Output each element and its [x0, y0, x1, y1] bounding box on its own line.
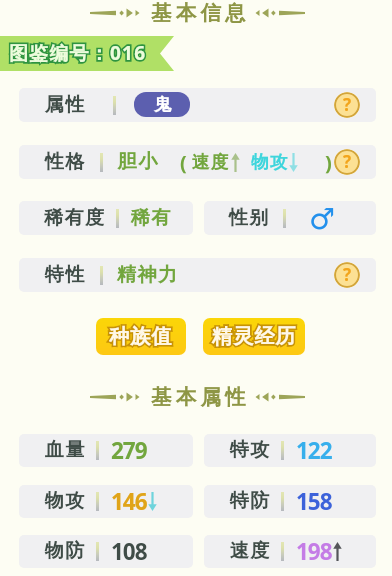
staticText: 精灵经历 [212, 324, 297, 349]
staticText: 稀有度 [44, 206, 106, 230]
staticText: 性格 [44, 150, 85, 174]
staticText: ? [343, 263, 352, 286]
button[interactable] [204, 535, 376, 568]
staticText: 物攻 [44, 489, 85, 513]
staticText: 122 [296, 435, 332, 466]
staticText: 图鉴编号：016 [9, 40, 147, 66]
button[interactable]: Help [334, 149, 360, 175]
staticText: 158 [296, 486, 332, 517]
staticText: 特攻 [229, 438, 270, 462]
staticText: 血量 [44, 438, 85, 462]
staticText: ( [180, 149, 187, 176]
button[interactable] [19, 201, 193, 235]
staticText: 特防 [229, 489, 270, 513]
staticText: ♂ [309, 202, 335, 234]
staticText: 精神力 [117, 263, 179, 287]
button[interactable] [204, 434, 376, 467]
staticText: 速度 [229, 539, 270, 563]
button[interactable]: Help [334, 92, 360, 118]
staticText: 基本属性 [151, 384, 250, 410]
button[interactable] [19, 485, 193, 518]
staticText: 精灵经历 [212, 324, 297, 349]
staticText: ? [343, 93, 352, 116]
staticText: 胆小 [117, 150, 158, 174]
staticText: 146 [111, 486, 147, 517]
staticText: 种族值 [109, 324, 173, 349]
staticText: 279 [111, 435, 147, 466]
button[interactable] [19, 88, 376, 122]
button[interactable]: 鬼 [134, 92, 190, 117]
button[interactable] [19, 434, 193, 467]
button[interactable]: Help [334, 262, 360, 288]
button[interactable] [204, 201, 376, 235]
staticText: 108 [111, 536, 147, 567]
staticText: 稀有 [130, 206, 171, 230]
button[interactable] [19, 535, 193, 568]
button[interactable] [19, 258, 376, 292]
staticText: 基本信息 [151, 0, 250, 26]
button[interactable]: 种族值 [96, 318, 186, 355]
staticText: 属性 [44, 93, 85, 117]
staticText: ) [325, 149, 332, 176]
staticText: 物防 [44, 539, 85, 563]
button[interactable]: 图鉴编号：016 [0, 36, 392, 71]
staticText: 种族值 [109, 324, 173, 349]
staticText: ? [343, 150, 352, 173]
staticText: 图鉴编号：016 [9, 40, 147, 66]
staticText: 鬼 [154, 94, 171, 115]
staticText: 物攻 [251, 151, 289, 173]
staticText: 速度 [192, 151, 230, 173]
staticText: 198 [296, 536, 332, 567]
staticText: 性别 [228, 206, 269, 230]
button[interactable]: 精灵经历 [203, 318, 305, 355]
staticText: 特性 [44, 263, 85, 287]
button[interactable] [19, 145, 376, 179]
button[interactable] [204, 485, 376, 518]
